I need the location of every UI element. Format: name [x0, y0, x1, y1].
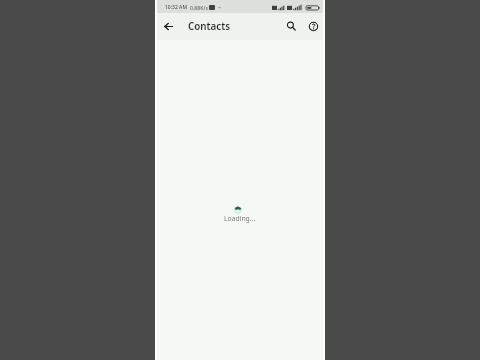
staticText: Contacts — [188, 20, 230, 33]
button[interactable]: Back — [159, 18, 177, 36]
staticText: 10:32 AM — [165, 4, 187, 11]
staticText: Loading... — [224, 214, 256, 223]
button[interactable]: Help — [304, 18, 322, 36]
staticText: 0.88K/s — [190, 4, 208, 11]
button[interactable]: Search — [282, 18, 300, 36]
